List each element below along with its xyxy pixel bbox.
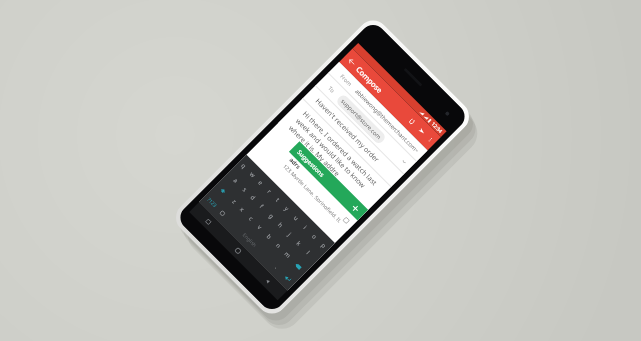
button[interactable]: q: [234, 155, 254, 176]
staticText: .: [273, 263, 280, 271]
staticText: support@store.com: [339, 97, 383, 141]
button[interactable]: o: [304, 225, 325, 246]
staticText: p: [319, 242, 328, 250]
button[interactable]: y: [276, 198, 297, 219]
button[interactable]: Shift: [211, 179, 235, 203]
button[interactable]: k: [288, 233, 309, 254]
staticText: 12:34: [430, 121, 444, 135]
staticText: e: [256, 179, 265, 187]
staticText: Haven't received my order: [313, 97, 382, 165]
button[interactable]: c: [241, 208, 261, 228]
button[interactable]: g: [261, 205, 281, 226]
staticText: x: [238, 205, 246, 214]
button[interactable]: d: [243, 188, 263, 208]
staticText: m: [282, 250, 292, 260]
staticText: c: [247, 215, 255, 222]
staticText: b: [265, 232, 273, 241]
staticText: i: [302, 224, 309, 231]
button[interactable]: Suggestions: [289, 141, 368, 220]
staticText: y: [282, 205, 291, 213]
button[interactable]: Emoji: [212, 203, 232, 222]
button[interactable]: m: [277, 244, 297, 265]
button[interactable]: Back: [248, 261, 287, 300]
staticText: q: [239, 162, 248, 170]
staticText: Compose: [354, 64, 385, 95]
staticText: t: [274, 196, 282, 204]
staticText: k: [295, 239, 303, 248]
button[interactable]: .: [267, 257, 287, 277]
button[interactable]: z: [224, 191, 244, 211]
staticText: v: [256, 223, 264, 232]
staticText: h: [276, 221, 285, 230]
staticText: s: [241, 186, 249, 193]
staticText: abbiewong@themerchant.com: [353, 87, 418, 153]
button[interactable]: n: [268, 235, 288, 256]
button[interactable]: Backspace: [286, 254, 311, 278]
button[interactable]: Home: [218, 231, 258, 271]
staticText: To: [327, 85, 337, 94]
button[interactable]: w: [242, 164, 263, 184]
button[interactable]: r: [259, 181, 280, 201]
staticText: w: [248, 170, 257, 179]
button[interactable]: Enter: [275, 266, 299, 290]
button[interactable]: e: [251, 172, 271, 193]
button[interactable]: j: [279, 224, 299, 244]
button[interactable]: h: [270, 215, 290, 235]
staticText: z: [230, 198, 238, 206]
button[interactable]: l: [297, 242, 318, 263]
staticText: Hi there, I ordered a watch last week an…: [286, 109, 382, 206]
button[interactable]: b: [258, 226, 279, 246]
button[interactable]: From: [336, 70, 423, 157]
staticText: g: [267, 212, 275, 220]
button[interactable]: t: [268, 189, 288, 210]
staticText: o: [310, 232, 319, 241]
button[interactable]: To: [324, 81, 412, 169]
button[interactable]: Symbols: [200, 190, 224, 214]
staticText: f: [258, 203, 266, 210]
button[interactable]: Send: [410, 119, 433, 143]
button[interactable]: x: [232, 200, 252, 220]
button[interactable]: Recents: [189, 202, 228, 241]
staticText: d: [249, 193, 257, 202]
staticText: 123 Myrtle Lane, Springfield, IL: [282, 162, 343, 223]
button[interactable]: u: [285, 207, 307, 228]
staticText: adrs: [287, 156, 302, 171]
staticText: From: [339, 73, 354, 87]
staticText: a: [232, 176, 240, 185]
button[interactable]: Space: [221, 211, 278, 268]
staticText: r: [266, 188, 273, 196]
staticText: n: [274, 242, 283, 250]
staticText: l: [304, 249, 312, 256]
staticText: ?123: [205, 196, 218, 209]
other: Add suggestion: [350, 203, 361, 214]
button[interactable]: p: [313, 234, 334, 256]
staticText: u: [292, 214, 300, 222]
button[interactable]: a: [226, 171, 246, 191]
button[interactable]: Navigate up: [339, 49, 365, 74]
button[interactable]: Attach file: [400, 109, 423, 133]
button[interactable]: f: [251, 196, 272, 217]
button[interactable]: More options: [420, 129, 440, 150]
staticText: English: [241, 232, 258, 249]
button[interactable]: i: [295, 216, 316, 237]
staticText: Suggestions: [295, 148, 326, 179]
staticText: j: [286, 231, 293, 238]
button[interactable]: s: [234, 179, 254, 199]
button[interactable]: v: [249, 217, 270, 237]
button[interactable]: adrs: [282, 156, 354, 227]
